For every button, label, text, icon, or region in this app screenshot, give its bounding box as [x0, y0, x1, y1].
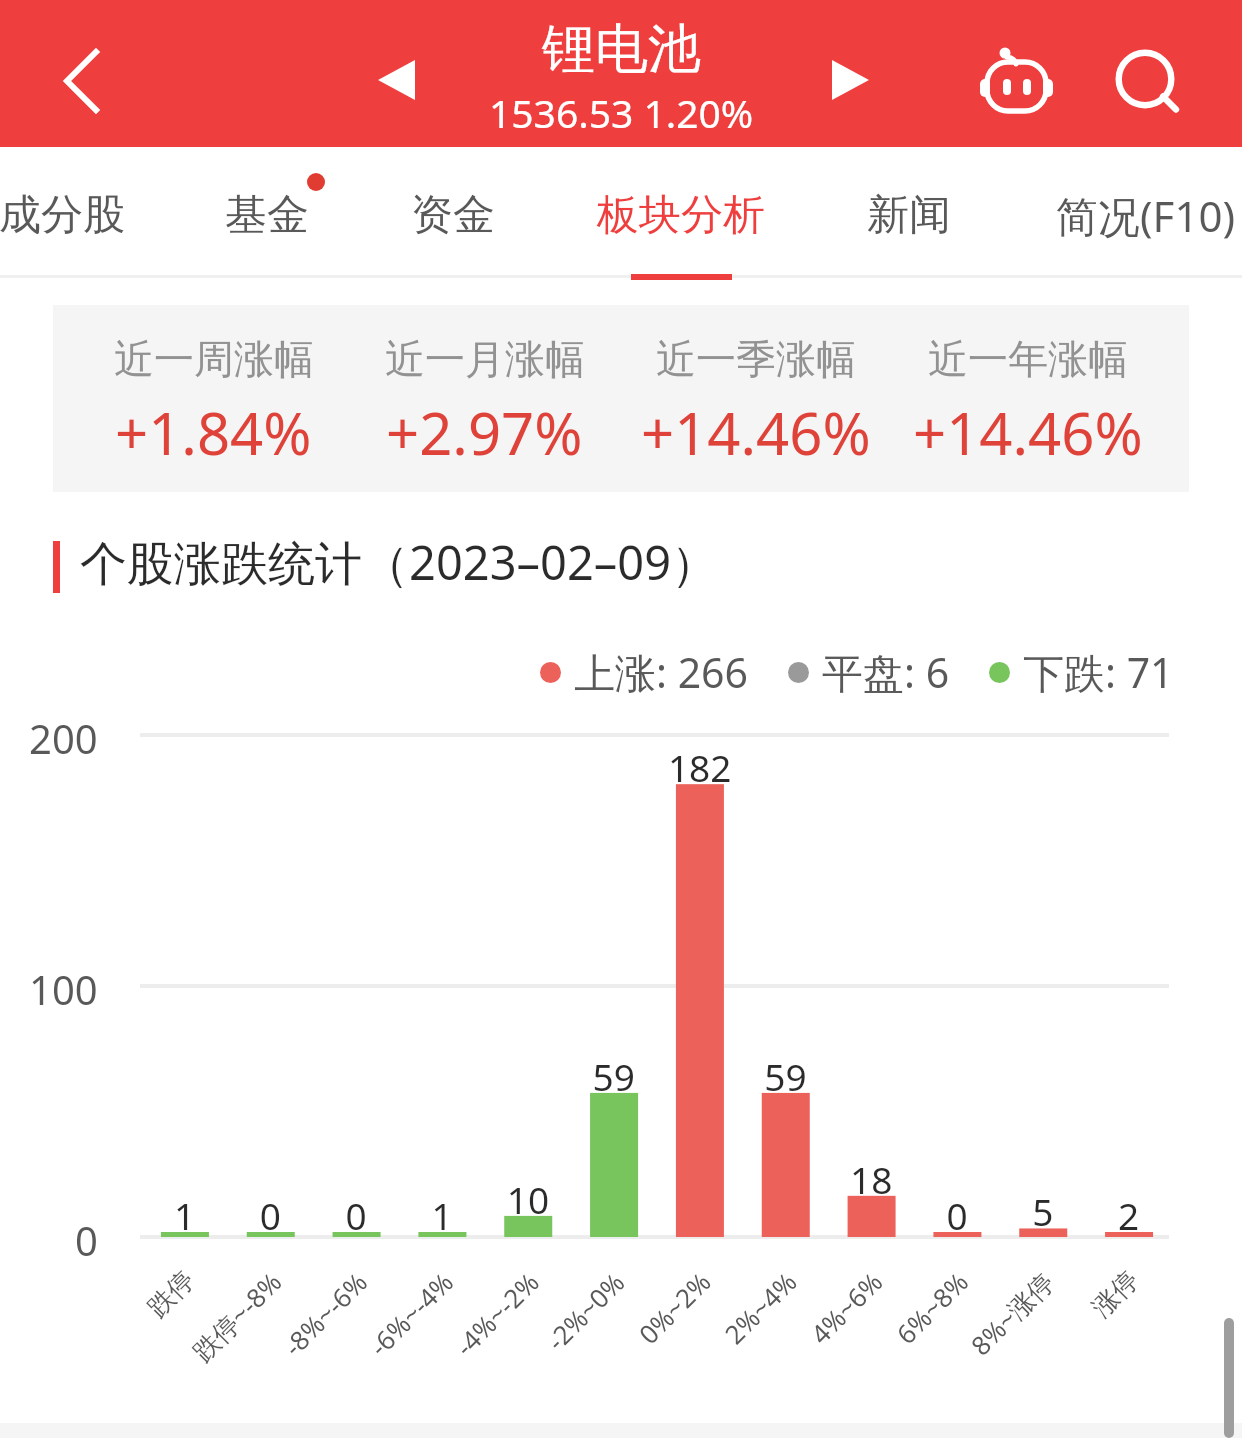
staticText: 1536.53 1.20% — [489, 86, 754, 139]
staticText: 板块分析 — [597, 189, 765, 242]
staticText: 基金 — [225, 189, 309, 242]
button[interactable]: Previous sector — [351, 35, 441, 125]
staticText: 资金 — [411, 189, 495, 242]
staticText: 上涨: 266 — [574, 644, 749, 700]
staticText: 锂电池 — [542, 16, 701, 83]
staticText: +14.46% — [913, 393, 1143, 472]
staticText: 近一季涨幅 — [656, 334, 856, 384]
button[interactable]: Search — [1097, 31, 1193, 127]
button[interactable]: 新闻 — [859, 147, 959, 278]
staticText: 近一周涨幅 — [114, 334, 314, 384]
staticText: +14.46% — [641, 393, 871, 472]
button[interactable]: Back — [37, 36, 127, 126]
staticText: +1.84% — [115, 393, 312, 472]
button[interactable]: 资金 — [402, 147, 504, 278]
staticText: 近一月涨幅 — [385, 334, 585, 384]
staticText: 平盘: 6 — [822, 644, 950, 700]
button[interactable]: 平盘: 6 — [788, 644, 950, 700]
button[interactable]: 下跌: 71 — [989, 644, 1174, 700]
button[interactable]: 简况(F10) — [1048, 147, 1242, 278]
staticText: 成分股 — [0, 189, 125, 242]
staticText: 新闻 — [867, 189, 951, 242]
staticText: 近一年涨幅 — [928, 334, 1128, 384]
staticText: 个股涨跌统计（2023–02–09） — [80, 530, 719, 594]
staticText: 下跌: 71 — [1023, 644, 1174, 700]
button[interactable]: Next sector — [806, 35, 896, 125]
button[interactable]: 基金 — [217, 147, 317, 278]
button[interactable]: AI assistant — [967, 29, 1067, 129]
button[interactable]: 板块分析 — [592, 147, 770, 278]
button[interactable]: 上涨: 266 — [540, 644, 749, 700]
staticText: 简况(F10) — [1056, 187, 1236, 244]
button[interactable]: 成分股 — [0, 147, 137, 278]
staticText: +2.97% — [386, 393, 583, 472]
